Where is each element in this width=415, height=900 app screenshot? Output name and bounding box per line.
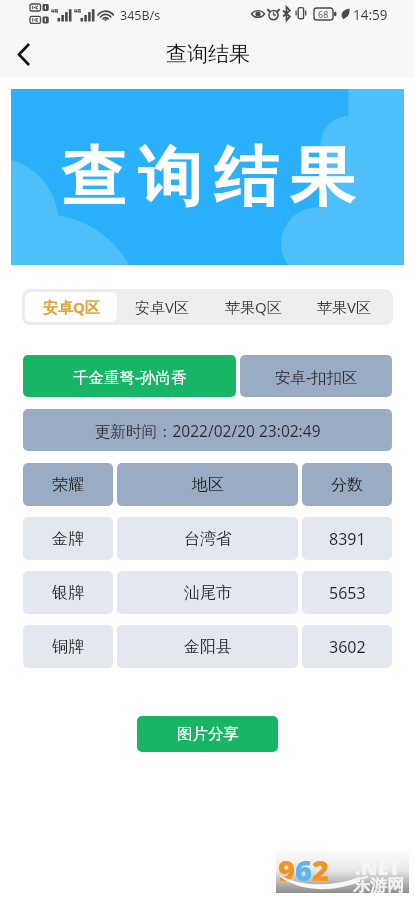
staticText: 乐游网: [353, 875, 404, 896]
staticText: 查询结果: [56, 137, 360, 218]
button[interactable]: 安卓V区: [117, 292, 208, 322]
staticText: 苹果Q区: [225, 297, 282, 317]
staticText: 金阳县: [184, 637, 232, 657]
button[interactable]: 苹果V区: [299, 292, 390, 322]
staticText: 铜牌: [52, 637, 84, 657]
staticText: 5653: [329, 582, 366, 604]
button[interactable]: 安卓Q区: [25, 292, 117, 322]
staticText: 查询结果: [166, 41, 250, 67]
staticText: 3602: [329, 636, 366, 658]
staticText: .NET: [355, 854, 401, 881]
staticText: 台湾省: [184, 529, 232, 549]
staticText: 荣耀: [52, 475, 84, 495]
staticText: 6: [295, 850, 312, 889]
button[interactable]: 图片分享: [137, 716, 278, 752]
staticText: 图片分享: [177, 724, 239, 744]
staticText: 68: [318, 8, 329, 20]
button[interactable]: Back: [6, 36, 42, 72]
staticText: 银牌: [52, 583, 84, 603]
staticText: 安卓V区: [135, 297, 190, 317]
staticText: 345B/s: [120, 7, 161, 24]
staticText: 8391: [329, 528, 366, 550]
staticText: 安卓-扣扣区: [275, 366, 358, 387]
staticText: 地区: [192, 475, 224, 495]
staticText: 9: [278, 850, 295, 889]
staticText: 分数: [331, 475, 363, 495]
staticText: 安卓Q区: [43, 297, 100, 317]
button[interactable]: 安卓-扣扣区: [240, 355, 392, 397]
staticText: 千金重弩-孙尚香: [73, 366, 187, 387]
button[interactable]: 苹果Q区: [208, 292, 299, 322]
staticText: 14:59: [353, 6, 388, 24]
staticText: 金牌: [52, 529, 84, 549]
staticText: 2: [312, 850, 329, 889]
staticText: 更新时间：2022/02/20 23:02:49: [95, 420, 321, 441]
staticText: 汕尾市: [184, 583, 232, 603]
staticText: 苹果V区: [317, 297, 372, 317]
button[interactable]: 千金重弩-孙尚香: [23, 355, 236, 397]
